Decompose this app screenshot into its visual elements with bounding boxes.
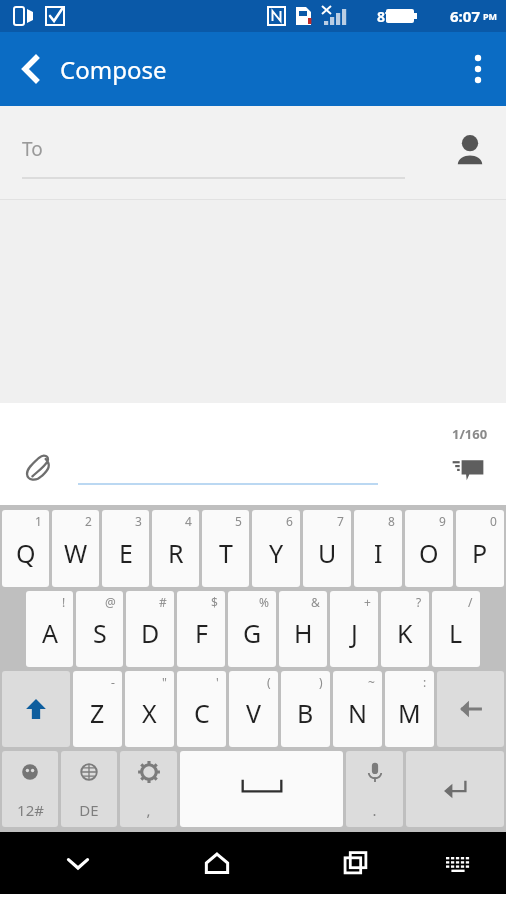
staticText: 7 <box>337 513 344 529</box>
staticText: G <box>243 616 262 650</box>
staticText: 1 <box>35 513 42 529</box>
staticText: " <box>162 674 167 690</box>
button[interactable]: P <box>456 510 504 587</box>
button[interactable]: M <box>385 671 434 747</box>
button[interactable]: O <box>405 510 453 587</box>
staticText: 8 <box>388 513 395 529</box>
staticText: L <box>449 616 463 650</box>
staticText: 12# <box>17 800 44 820</box>
staticText: C <box>194 696 210 730</box>
staticText: I <box>374 536 383 570</box>
button[interactable]: Q <box>2 510 49 587</box>
staticText: % <box>259 594 269 610</box>
staticText: P <box>472 536 488 570</box>
button[interactable]: Z <box>73 671 122 747</box>
staticText: ~ <box>368 674 375 690</box>
button[interactable]: B <box>281 671 330 747</box>
staticText: DE <box>79 800 99 820</box>
button[interactable]: F <box>177 591 225 667</box>
staticText: Y <box>269 536 284 570</box>
button[interactable]: N <box>333 671 382 747</box>
staticText: 5 <box>235 513 242 529</box>
staticText: A <box>42 616 58 650</box>
button[interactable]: C <box>177 671 226 747</box>
button[interactable]: Switch keyboard <box>425 832 491 894</box>
button[interactable]: More options <box>450 32 506 106</box>
staticText: 0 <box>490 513 497 529</box>
button[interactable]: DE <box>61 751 117 827</box>
button[interactable]: A <box>26 591 73 667</box>
button[interactable]: Send <box>436 436 500 500</box>
button[interactable]: Pick contact <box>434 106 506 199</box>
button[interactable]: Recent apps <box>319 832 392 894</box>
staticText: ( <box>267 674 271 690</box>
staticText: & <box>311 594 320 610</box>
staticText: F <box>195 616 208 650</box>
staticText: 6:07 <box>450 6 480 26</box>
staticText: @ <box>105 594 116 610</box>
button[interactable]: space <box>180 751 343 827</box>
staticText: X <box>142 696 157 730</box>
button[interactable]: G <box>228 591 276 667</box>
staticText: O <box>419 536 439 570</box>
button[interactable]: , <box>120 751 177 827</box>
staticText: K <box>397 616 413 650</box>
staticText: ' <box>216 674 219 690</box>
button[interactable]: Home <box>180 832 253 894</box>
staticText: N <box>348 696 368 730</box>
staticText: E <box>119 536 133 570</box>
button[interactable]: 12# <box>2 751 58 827</box>
staticText: . <box>372 800 377 820</box>
staticText: U <box>318 536 337 570</box>
staticText: ! <box>62 594 66 610</box>
staticText: 2 <box>85 513 92 529</box>
button[interactable]: Hide keyboard <box>41 832 114 894</box>
staticText: ? <box>416 594 422 610</box>
button[interactable]: shift <box>2 671 70 747</box>
button[interactable]: S <box>76 591 123 667</box>
button[interactable]: T <box>202 510 249 587</box>
staticText: , <box>146 800 151 820</box>
button[interactable]: D <box>126 591 174 667</box>
staticText: - <box>111 674 115 690</box>
staticText: : <box>423 674 427 690</box>
staticText: S <box>93 616 107 650</box>
staticText: 1/160 <box>452 425 488 443</box>
staticText: To <box>22 136 43 162</box>
staticText: R <box>168 536 184 570</box>
button[interactable]: H <box>279 591 327 667</box>
button[interactable]: R <box>152 510 199 587</box>
button[interactable]: . <box>346 751 403 827</box>
staticText: 4 <box>185 513 192 529</box>
button[interactable]: Y <box>252 510 300 587</box>
staticText: W <box>64 536 88 570</box>
button[interactable]: L <box>432 591 480 667</box>
staticText: 9 <box>439 513 446 529</box>
button[interactable]: V <box>229 671 278 747</box>
button[interactable]: X <box>125 671 174 747</box>
button[interactable]: K <box>381 591 429 667</box>
staticText: / <box>468 594 473 610</box>
button[interactable]: enter <box>406 751 504 827</box>
staticText: Q <box>16 536 36 570</box>
button[interactable]: W <box>52 510 99 587</box>
staticText: $ <box>211 594 218 610</box>
staticText: + <box>364 594 371 610</box>
staticText: 6 <box>286 513 293 529</box>
staticText: D <box>141 616 160 650</box>
staticText: ) <box>319 674 323 690</box>
button[interactable]: E <box>102 510 149 587</box>
button[interactable]: U <box>303 510 351 587</box>
button[interactable]: Back <box>0 32 60 106</box>
button[interactable]: I <box>354 510 402 587</box>
staticText: V <box>246 696 262 730</box>
button[interactable]: back <box>437 671 504 747</box>
staticText: 87% <box>377 7 406 26</box>
staticText: J <box>351 616 358 650</box>
staticText: PM <box>483 10 498 22</box>
button[interactable]: J <box>330 591 378 667</box>
button[interactable]: Attach <box>8 437 70 499</box>
button[interactable]: To <box>0 106 434 199</box>
staticText: B <box>297 696 314 730</box>
staticText: Compose <box>60 53 167 86</box>
